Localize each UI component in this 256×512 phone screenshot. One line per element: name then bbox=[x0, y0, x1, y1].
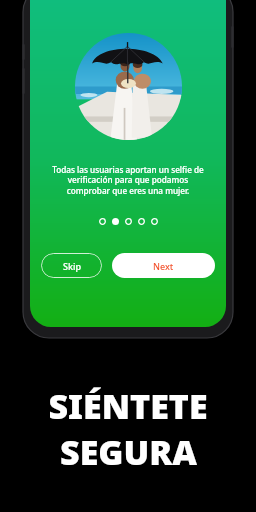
staticText: Todas las usuarias aportan un selfie de … bbox=[51, 164, 205, 197]
button[interactable]: Skip bbox=[41, 253, 102, 278]
staticText: Skip bbox=[63, 260, 81, 272]
staticText: Next bbox=[153, 260, 174, 272]
staticText: SEGURA bbox=[60, 429, 197, 475]
button[interactable]: Next bbox=[112, 253, 215, 278]
staticText: SIÉNTETE bbox=[48, 383, 208, 429]
